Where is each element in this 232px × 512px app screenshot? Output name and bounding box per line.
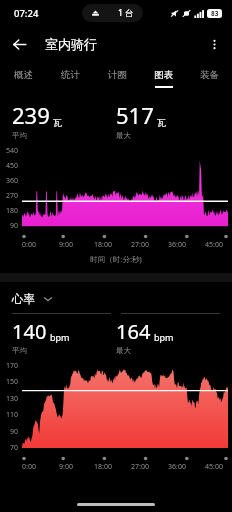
staticText: 27:00	[131, 240, 149, 250]
button[interactable]: 统计	[47, 62, 94, 94]
staticText: 180	[6, 206, 19, 216]
staticText: 心率	[12, 292, 35, 306]
staticText: bpm	[50, 331, 70, 343]
staticText: 70	[10, 443, 19, 453]
staticText: 平均	[12, 131, 27, 140]
staticText: 装备	[200, 69, 219, 81]
staticText: 图表	[154, 69, 173, 81]
staticText: 164	[116, 318, 151, 345]
staticText: 1 台	[118, 7, 134, 19]
staticText: 最大	[116, 131, 131, 140]
staticText: 140	[12, 318, 47, 345]
staticText: 18:00	[94, 462, 112, 472]
staticText: 83	[211, 9, 219, 18]
button[interactable]: 计圈	[94, 62, 140, 94]
staticText: 239	[12, 100, 50, 130]
staticText: 瓦	[53, 117, 62, 128]
staticText: 270	[6, 191, 19, 201]
staticText: 130	[6, 394, 19, 404]
button[interactable]: 装备	[186, 62, 232, 94]
staticText: 室内骑行	[45, 36, 97, 52]
button[interactable]: More options	[201, 31, 227, 57]
button[interactable]: 图表	[140, 62, 186, 94]
staticText: 517	[116, 100, 154, 130]
staticText: 统计	[61, 69, 80, 81]
staticText: 瓦	[157, 117, 166, 128]
staticText: 9:00	[59, 462, 73, 472]
staticText: 150	[6, 377, 19, 387]
staticText: 时间（时:分:秒)	[0, 254, 232, 264]
staticText: 36:00	[168, 240, 186, 250]
staticText: 360	[6, 176, 19, 186]
staticText: 0:00	[22, 240, 36, 250]
staticText: 18:00	[94, 240, 112, 250]
staticText: 170	[6, 361, 19, 371]
staticText: 平均	[12, 346, 27, 355]
staticText: 36:00	[168, 462, 186, 472]
staticText: bpm	[154, 331, 174, 343]
staticText: 450	[6, 161, 19, 171]
staticText: 110	[6, 410, 19, 420]
staticText: 计圈	[108, 69, 127, 81]
staticText: 90	[10, 427, 19, 437]
staticText: 45:00	[205, 462, 223, 472]
staticText: 07:24	[14, 7, 39, 20]
staticText: 540	[6, 146, 19, 156]
staticText: 27:00	[131, 462, 149, 472]
staticText: 概述	[14, 69, 33, 81]
staticText: 90	[10, 221, 19, 231]
staticText: 最大	[116, 346, 131, 355]
staticText: 45:00	[205, 240, 223, 250]
staticText: 0:00	[22, 462, 36, 472]
button[interactable]: Back	[6, 31, 32, 57]
staticText: 9:00	[59, 240, 73, 250]
button[interactable]: 心率	[12, 292, 53, 306]
button[interactable]: 概述	[0, 62, 47, 94]
